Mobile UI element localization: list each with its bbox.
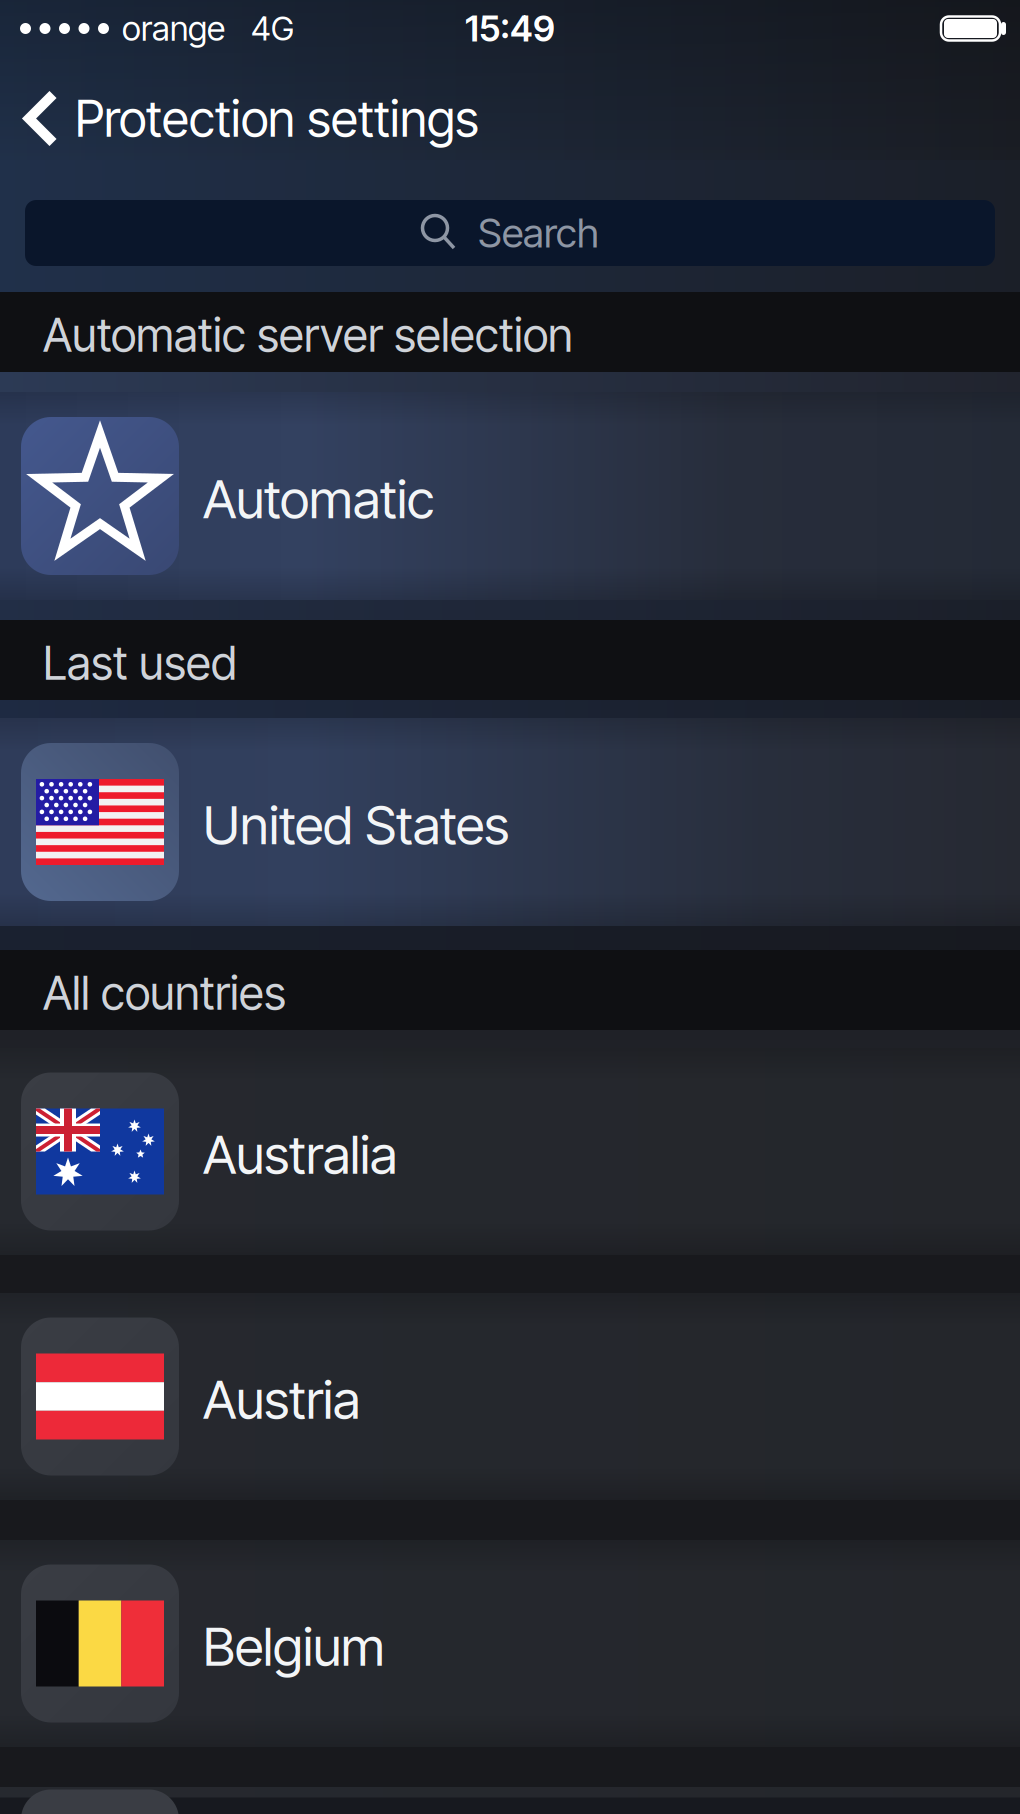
button[interactable]: Back [0, 91, 58, 145]
staticText: Austria [203, 1367, 360, 1431]
button[interactable]: Automatic [0, 392, 1020, 600]
button[interactable]: Next country [0, 1787, 1020, 1814]
button[interactable]: United States [0, 718, 1020, 926]
staticText: orange [122, 8, 225, 49]
staticText: 15:49 [465, 7, 555, 50]
button[interactable]: Search [25, 200, 995, 266]
staticText: All countries [43, 965, 286, 1021]
button[interactable]: Belgium [0, 1540, 1020, 1747]
staticText: 4G [251, 8, 294, 48]
staticText: Belgium [203, 1614, 385, 1678]
staticText: Last used [43, 635, 237, 691]
staticText: Search [478, 209, 599, 257]
staticText: United States [203, 793, 509, 857]
staticText: Automatic [203, 467, 434, 531]
button[interactable]: Austria [0, 1293, 1020, 1500]
staticText: Protection settings [75, 88, 479, 149]
button[interactable]: Australia [0, 1048, 1020, 1255]
staticText: Automatic server selection [43, 307, 573, 363]
staticText: Australia [203, 1122, 397, 1186]
